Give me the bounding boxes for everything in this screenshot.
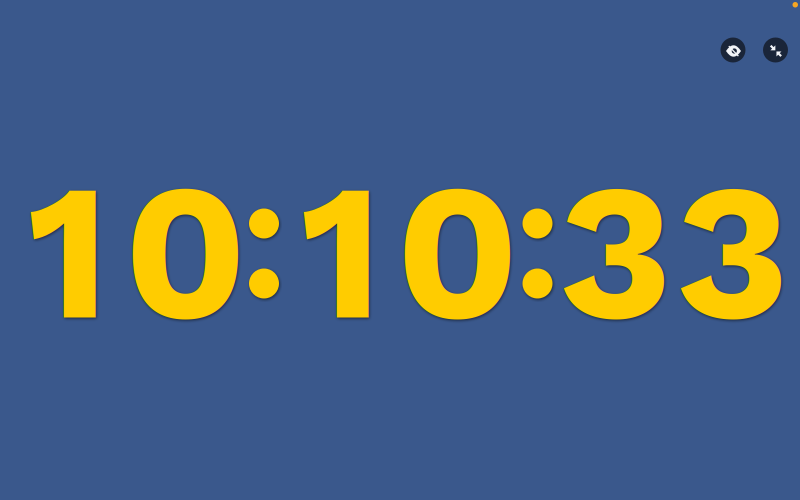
- staticText: 3: [558, 139, 672, 364]
- button[interactable]: Exit full screen: [763, 37, 788, 62]
- staticText: 1: [300, 139, 383, 364]
- staticText: 3: [675, 139, 789, 364]
- staticText: 0: [395, 139, 519, 364]
- staticText: 1: [27, 139, 110, 364]
- staticText: 0: [123, 139, 247, 364]
- button[interactable]: Hide controls: [720, 37, 745, 62]
